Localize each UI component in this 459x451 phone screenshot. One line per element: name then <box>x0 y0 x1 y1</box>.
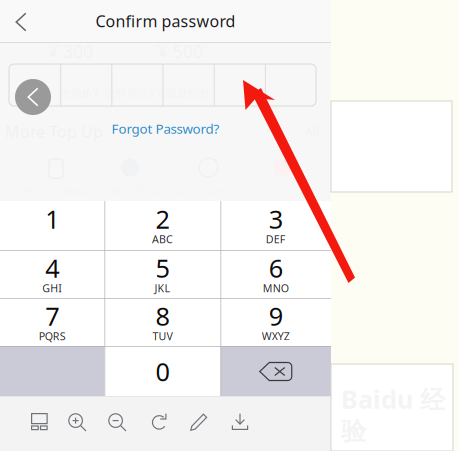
staticText: Forgot Password? <box>111 120 219 137</box>
staticText: 8 <box>155 299 169 333</box>
staticText: GHI <box>42 281 62 295</box>
staticText: MNO <box>263 281 289 295</box>
button[interactable]: 6 <box>221 251 330 298</box>
staticText: 7 <box>45 299 59 333</box>
button[interactable]: 9 <box>221 299 330 346</box>
button[interactable]: Back <box>6 11 36 33</box>
staticText: 1 <box>45 202 59 236</box>
staticText: ¥ 300 <box>48 40 93 63</box>
staticText: 6 <box>269 251 283 285</box>
button[interactable]: Delete <box>220 347 331 396</box>
button[interactable]: 5 <box>105 251 220 298</box>
staticText: Baidu 经验 <box>341 382 445 447</box>
staticText: 市场价¥ 这些商品¥元品是红包 <box>60 86 210 100</box>
staticText: TUV <box>152 329 172 343</box>
staticText: 3 <box>269 202 283 236</box>
staticText: PQRS <box>39 329 66 343</box>
button[interactable]: Forgot Password? <box>111 120 219 137</box>
staticText: ¥ 500 <box>158 40 203 63</box>
button[interactable]: 4 <box>0 251 104 298</box>
button[interactable]: 1 <box>0 202 104 249</box>
button[interactable]: 0 <box>104 347 220 396</box>
staticText: Confirm password <box>95 10 235 32</box>
button[interactable]: 8 <box>105 299 220 346</box>
button[interactable]: 7 <box>0 299 104 346</box>
button[interactable]: Zoom out <box>108 413 127 432</box>
button[interactable]: Zoom in <box>68 413 87 432</box>
staticText: 5 <box>155 251 169 285</box>
staticText: JKL <box>154 281 170 295</box>
staticText: 0 <box>155 355 169 388</box>
button[interactable]: 3 <box>221 202 330 249</box>
staticText: WXYZ <box>262 329 290 343</box>
button[interactable]: Refresh <box>151 413 169 431</box>
button[interactable]: 2 <box>105 202 220 249</box>
button[interactable]: Pages <box>31 413 48 430</box>
button[interactable]: Back <box>15 79 51 115</box>
staticText: 2 <box>155 202 169 236</box>
button[interactable]: Download <box>231 413 249 431</box>
staticText: ABC <box>152 232 173 246</box>
staticText: jingyan.baidu.com <box>342 448 443 451</box>
staticText: DEF <box>266 232 286 246</box>
staticText: 9 <box>269 299 283 333</box>
staticText: 4 <box>45 251 59 285</box>
button[interactable]: Edit <box>190 413 208 431</box>
